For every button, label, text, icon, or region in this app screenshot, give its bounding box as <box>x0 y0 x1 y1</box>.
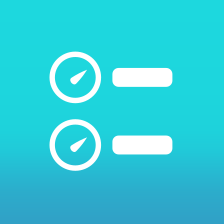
button[interactable]: Second benchmark result <box>0 0 224 224</box>
button[interactable]: First benchmark result <box>0 0 224 224</box>
